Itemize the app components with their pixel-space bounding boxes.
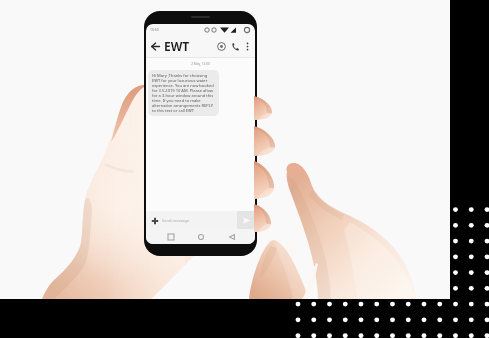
button[interactable]: Back (225, 230, 238, 243)
staticText: 10:50 (150, 27, 159, 32)
staticText: Send message (162, 218, 190, 223)
staticText: EWT (164, 38, 190, 54)
staticText: Hi Mary ,Thanks for choosing EWT for you… (152, 73, 215, 113)
button[interactable]: Add attachment (149, 215, 160, 226)
staticText: 2 May, 13:00 (146, 62, 255, 66)
button[interactable]: More options (242, 41, 252, 51)
button[interactable]: Send (237, 211, 255, 229)
button[interactable]: Video call (215, 40, 227, 52)
button[interactable]: Recents (164, 230, 177, 243)
button[interactable]: Home (194, 230, 207, 243)
button[interactable]: Call (229, 40, 241, 52)
button[interactable]: Back (149, 40, 162, 53)
